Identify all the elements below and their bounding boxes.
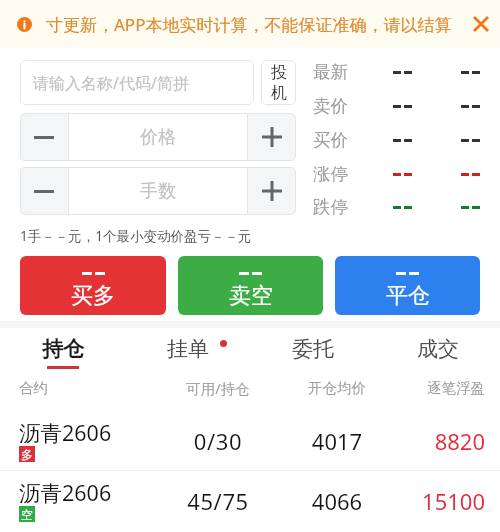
button[interactable]: 挂单 [125, 328, 250, 376]
staticText: 空 [21, 507, 33, 522]
staticText: 涨停 [313, 163, 375, 185]
staticText: 寸更新，APP本地实时计算，不能保证准确，请以结算单为准 [46, 13, 465, 36]
staticText: 持仓 [42, 336, 84, 362]
button[interactable]: 成交 [375, 328, 500, 376]
button[interactable]: 持仓 [0, 328, 125, 376]
button[interactable]: 投 [261, 60, 296, 105]
staticText: 手数 [140, 180, 176, 203]
staticText: 跌停 [313, 196, 375, 218]
staticText: 15100 [410, 486, 485, 516]
button[interactable]: Increase 价格 [248, 113, 296, 161]
button[interactable]: 平仓 [335, 256, 480, 315]
button[interactable]: 卖空 [178, 256, 323, 315]
button[interactable]: Close [465, 8, 497, 40]
staticText: 买价 [313, 129, 375, 151]
staticText: 逐笔浮盈 [410, 379, 485, 397]
button[interactable]: 委托 [250, 328, 375, 376]
staticText: 多 [21, 447, 33, 462]
staticText: 平仓 [386, 282, 430, 310]
staticText: 4017 [264, 426, 410, 456]
staticText: 成交 [417, 336, 459, 362]
staticText: 请输入名称/代码/简拼 [33, 72, 189, 94]
staticText: 45/75 [172, 486, 264, 516]
button[interactable]: Decrease 手数 [20, 167, 68, 215]
staticText: 4066 [264, 486, 410, 516]
staticText: 沥青2606 [19, 478, 112, 507]
staticText: 委托 [292, 336, 334, 362]
staticText: 合约 [19, 379, 172, 397]
staticText: 价格 [140, 126, 176, 149]
staticText: 开仓均价 [264, 379, 410, 397]
staticText: 沥青2606 [19, 418, 112, 447]
staticText: 0/30 [172, 426, 264, 456]
button[interactable]: 请输入名称/代码/简拼 [20, 60, 254, 105]
staticText: 最新 [313, 61, 375, 83]
staticText: 卖空 [229, 282, 273, 310]
button[interactable]: 价格 [69, 113, 247, 161]
staticText: 可用/持仓 [172, 378, 264, 398]
staticText: 8820 [410, 426, 485, 456]
button[interactable]: 寸更新，APP本地实时计算，不能保证准确，请以结算单为准 [0, 0, 500, 48]
staticText: 1手－－元，1个最小变动价盈亏－－元 [20, 227, 252, 245]
staticText: 卖价 [313, 95, 375, 117]
staticText: 挂单 [167, 336, 209, 362]
button[interactable]: Increase 手数 [248, 167, 296, 215]
staticText: 买多 [71, 282, 115, 310]
button[interactable]: 手数 [69, 167, 247, 215]
button[interactable]: 沥青2606 [0, 411, 500, 470]
staticText: 投 [271, 63, 287, 83]
staticText: 机 [271, 83, 287, 103]
button[interactable]: Decrease 价格 [20, 113, 68, 161]
button[interactable]: 沥青2606 [0, 471, 500, 530]
button[interactable]: 买多 [20, 256, 166, 315]
